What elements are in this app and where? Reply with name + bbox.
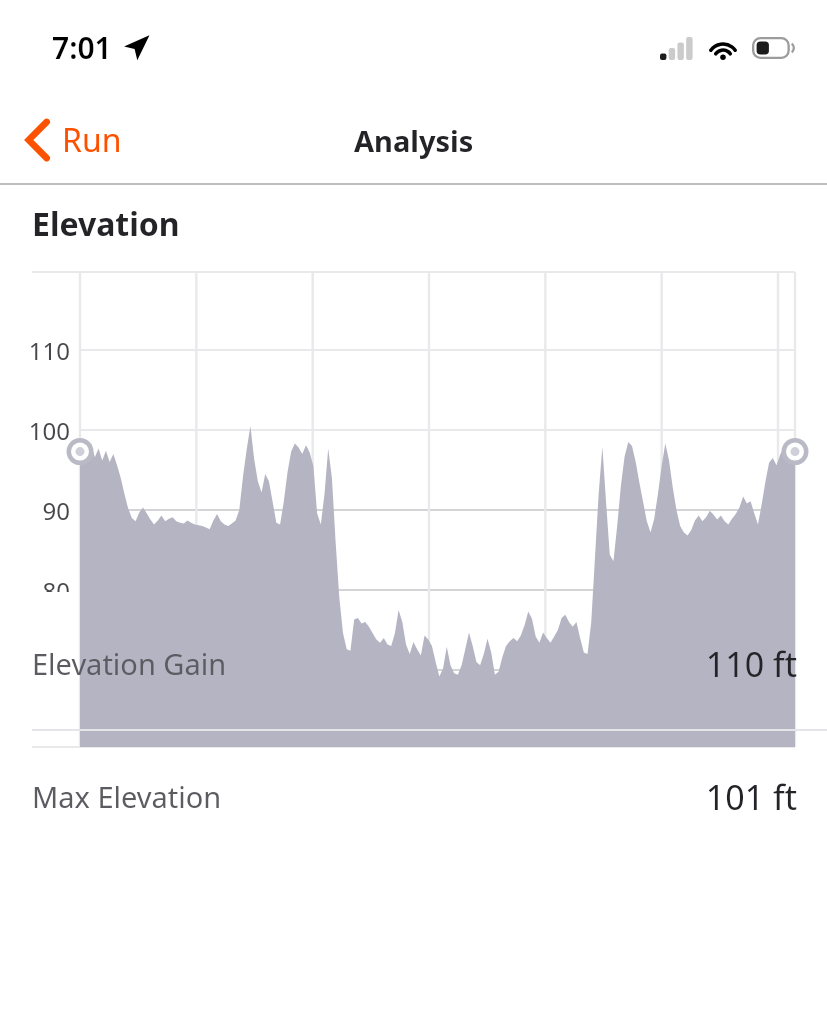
button[interactable]: Elevation Gain: [0, 598, 827, 729]
other: Battery: [752, 37, 794, 59]
staticText: Elevation Gain: [32, 644, 227, 683]
staticText: Max Elevation: [32, 777, 222, 816]
staticText: Elevation: [32, 202, 180, 246]
staticText: 90: [0, 494, 70, 527]
staticText: 100: [0, 414, 70, 447]
staticText: Run: [62, 118, 122, 162]
staticText: 7:01: [52, 27, 112, 68]
other: Location active: [123, 34, 150, 61]
button[interactable]: Run: [0, 108, 140, 172]
button[interactable]: Max Elevation: [0, 731, 827, 862]
staticText: 110: [0, 334, 70, 367]
staticText: 101 ft: [705, 774, 797, 820]
staticText: Analysis: [354, 121, 474, 160]
staticText: 110 ft: [705, 641, 797, 687]
staticText: 80: [0, 574, 70, 592]
other: Cellular signal: [660, 37, 694, 60]
other: Wi-Fi: [707, 36, 739, 60]
